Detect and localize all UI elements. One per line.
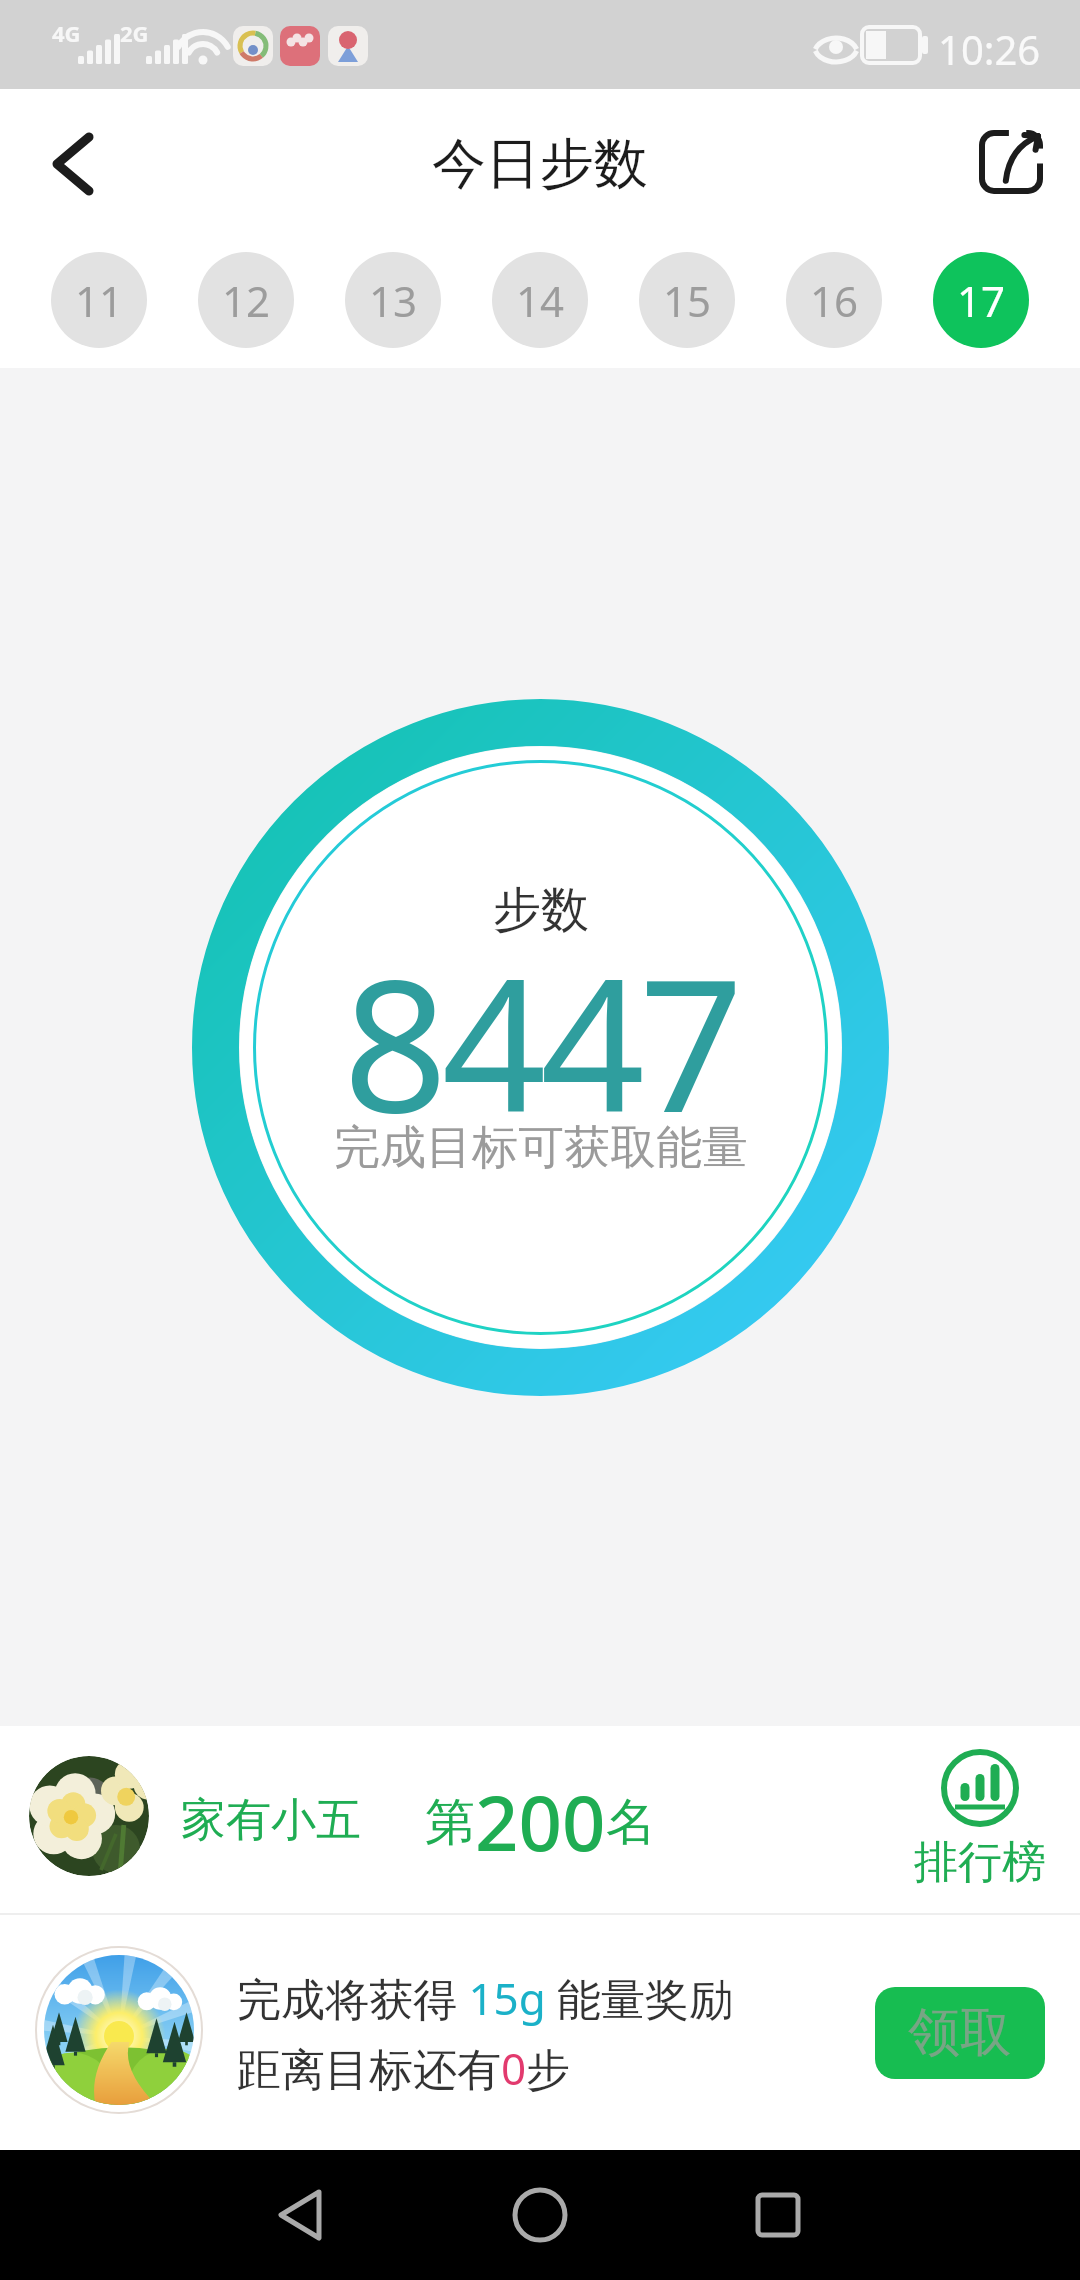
button[interactable] [500,2175,580,2255]
staticText: 2G [120,18,149,48]
button[interactable]: 16 [786,252,882,348]
staticText: 排行榜 [914,1835,1046,1890]
staticText: 11 [75,272,124,329]
staticText: 距离目标还有0步 [237,2038,571,2098]
button[interactable]: 排行榜 [914,1749,1046,1890]
button[interactable]: 12 [198,252,294,348]
button[interactable] [33,134,113,194]
button[interactable]: 17 [933,252,1029,348]
staticText: 领取 [908,2000,1012,2066]
staticText: 今日步数 [432,130,648,198]
staticText: 13 [369,272,418,329]
button[interactable]: 11 [51,252,147,348]
staticText: 8447 [343,916,738,1165]
staticText: 16 [810,272,859,329]
staticText: 步数 [493,880,589,940]
staticText: 第 [425,1791,475,1854]
staticText: 完成目标可获取能量 [334,1119,748,1177]
button[interactable]: 13 [345,252,441,348]
button[interactable] [260,2175,340,2255]
button[interactable]: 领取 [875,1987,1045,2079]
staticText: 200 [475,1770,606,1874]
staticText: 10:26 [938,22,1041,76]
staticText: 名 [606,1791,656,1854]
button[interactable]: 家有小五 [0,1726,1080,1913]
button[interactable]: 15 [639,252,735,348]
staticText: 15 [663,272,712,329]
staticText: 4G [52,18,81,48]
staticText: 家有小五 [181,1792,361,1849]
button[interactable] [974,123,1050,199]
staticText: 17 [957,272,1006,329]
button[interactable]: 14 [492,252,588,348]
staticText: 14 [516,272,565,329]
staticText: 12 [222,272,271,329]
button[interactable] [738,2175,818,2255]
staticText: 完成将获得 15g 能量奖励 [237,1968,734,2028]
